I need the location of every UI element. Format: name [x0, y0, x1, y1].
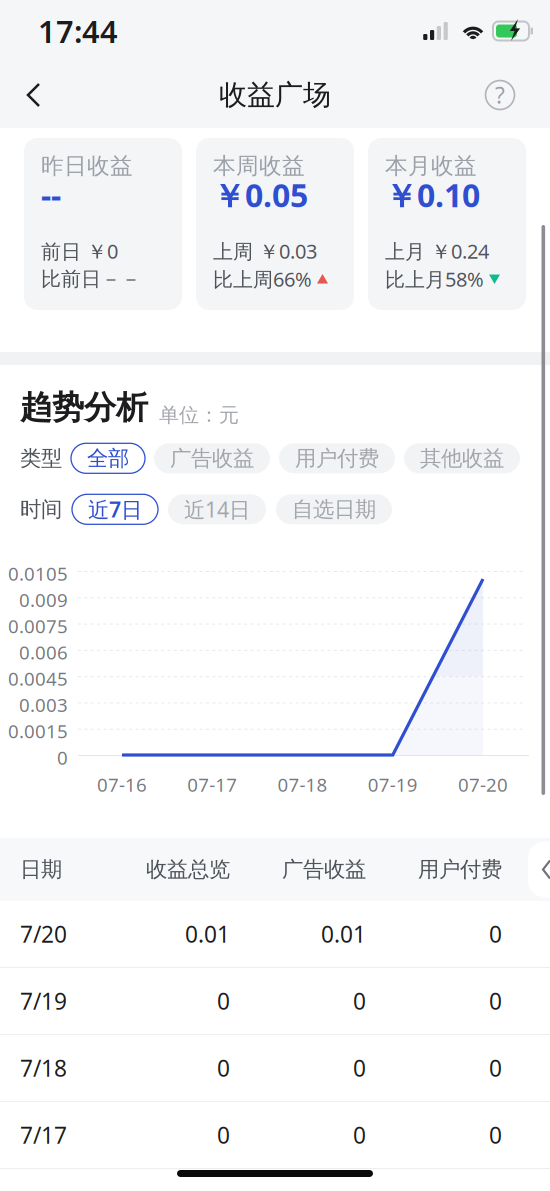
button[interactable]: 近7日 [72, 494, 158, 524]
button[interactable]: Back [12, 72, 56, 118]
staticText: ? [495, 80, 505, 110]
staticText: 0.0045 [8, 666, 68, 691]
staticText: 0 [489, 919, 502, 949]
staticText: 类型 [20, 445, 62, 471]
staticText: 0.009 [19, 587, 68, 612]
staticText: 趋势分析 [20, 388, 148, 427]
staticText: 比上周66% [213, 266, 312, 292]
staticText: 0 [217, 1053, 230, 1083]
staticText: 0 [489, 986, 502, 1016]
staticText: 其他收益 [420, 445, 504, 471]
staticText: 0 [217, 1120, 230, 1150]
staticText: 时间 [20, 496, 62, 522]
staticText: 0.01 [321, 919, 366, 949]
button[interactable]: 广告收益 [154, 443, 270, 473]
staticText: 用户付费 [418, 856, 502, 883]
staticText: 0 [353, 986, 366, 1016]
staticText: 0 [489, 1120, 502, 1150]
staticText: 单位：元 [159, 403, 239, 427]
staticText: ￥0.10 [385, 174, 480, 216]
staticText: 比上月58% [385, 266, 484, 292]
staticText: ￥0.05 [213, 174, 308, 216]
staticText: 0 [353, 1120, 366, 1150]
staticText: 自选日期 [292, 496, 376, 522]
staticText: 昨日收益 [41, 152, 133, 180]
staticText: 7/19 [20, 986, 67, 1016]
staticText: 广告收益 [170, 445, 254, 471]
staticText: 本月收益 [385, 152, 477, 180]
button[interactable]: 近14日 [168, 494, 266, 524]
staticText: 7/20 [20, 919, 67, 949]
staticText: 日期 [20, 856, 62, 883]
staticText: 07-20 [458, 772, 508, 797]
button[interactable]: 全部 [71, 443, 145, 473]
staticText: 0 [57, 745, 68, 770]
staticText: 上周 ￥0.03 [213, 238, 317, 264]
staticText: -- [41, 174, 61, 216]
staticText: 0.0105 [8, 561, 68, 586]
staticText: 7/17 [20, 1120, 67, 1150]
staticText: 07-19 [368, 772, 418, 797]
staticText: 7/18 [20, 1053, 67, 1083]
staticText: 广告收益 [282, 856, 366, 883]
button[interactable]: Help [478, 72, 522, 118]
staticText: 收益总览 [146, 856, 230, 883]
staticText: 近7日 [88, 495, 142, 523]
staticText: 17:44 [38, 11, 118, 51]
staticText: 0.0075 [8, 614, 68, 638]
staticText: 本周收益 [213, 152, 305, 180]
staticText: 0.0015 [8, 719, 68, 743]
staticText: 近14日 [184, 495, 250, 523]
button[interactable]: Scroll table left [528, 841, 550, 897]
staticText: 0.01 [185, 919, 230, 949]
button[interactable]: 用户付费 [279, 443, 395, 473]
staticText: 0 [217, 986, 230, 1016]
staticText: 07-18 [277, 772, 327, 797]
button[interactable]: 自选日期 [276, 494, 392, 524]
staticText: 0 [489, 1053, 502, 1083]
staticText: 全部 [87, 445, 129, 471]
staticText: 上月 ￥0.24 [385, 238, 489, 264]
staticText: 07-16 [97, 772, 147, 797]
staticText: 0 [353, 1053, 366, 1083]
staticText: 07-17 [187, 772, 237, 797]
staticText: 比前日－－ [41, 267, 141, 291]
staticText: 收益广场 [219, 78, 331, 112]
staticText: 0.003 [19, 692, 68, 717]
staticText: 用户付费 [295, 445, 379, 471]
button[interactable]: 其他收益 [404, 443, 520, 473]
staticText: 前日 ￥0 [41, 238, 118, 264]
staticText: 0.006 [19, 640, 68, 665]
